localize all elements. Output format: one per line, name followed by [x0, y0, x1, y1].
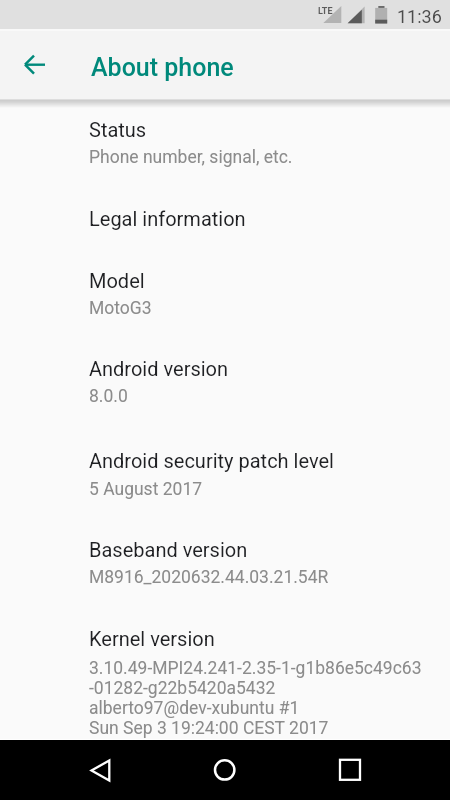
button[interactable]: Home	[200, 742, 250, 792]
button[interactable]: Back	[75, 742, 125, 792]
staticText: Baseband version	[89, 538, 248, 561]
staticText: MotoG3	[89, 298, 152, 319]
staticText: 11:36	[397, 6, 442, 27]
button[interactable]: Recent apps	[325, 742, 375, 792]
staticText: LTE	[318, 6, 333, 17]
staticText: About phone	[91, 53, 234, 82]
button[interactable]: Baseband version	[0, 524, 450, 608]
staticText: Legal information	[89, 207, 246, 230]
staticText: Model	[89, 269, 145, 292]
staticText: Android security patch level	[89, 449, 334, 472]
staticText: M8916_2020632.44.03.21.54R	[89, 567, 329, 588]
staticText: 5 August 2017	[89, 479, 203, 500]
button[interactable]: Android security patch level	[0, 433, 450, 520]
staticText: Android version	[89, 357, 229, 380]
staticText: Kernel version	[89, 627, 215, 650]
button[interactable]: Legal information	[0, 195, 450, 252]
button[interactable]: Kernel version	[0, 612, 450, 738]
button[interactable]: Navigate up	[13, 43, 55, 85]
staticText: 3.10.49-MPI24.241-2.35-1-g1b86e5c49c63 -…	[89, 658, 422, 738]
staticText: 8.0.0	[89, 386, 128, 407]
button[interactable]: Status	[0, 110, 450, 189]
button[interactable]: Android version	[0, 343, 450, 428]
button[interactable]: Model	[0, 255, 450, 340]
staticText: Phone number, signal, etc.	[89, 147, 293, 168]
staticText: Status	[89, 118, 147, 141]
